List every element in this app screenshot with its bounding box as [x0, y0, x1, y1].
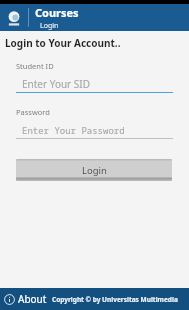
staticText: Password — [16, 107, 50, 117]
staticText: Courses — [35, 5, 79, 20]
button[interactable]: Enter Your Password — [16, 121, 173, 139]
staticText: Enter Your SID — [22, 77, 91, 91]
staticText: Student ID — [16, 61, 54, 71]
staticText: About — [18, 292, 47, 306]
staticText: Enter Your Password — [22, 124, 125, 136]
staticText: Copyright © by Universitas Multimedia Nu… — [52, 295, 189, 304]
staticText: Login — [40, 21, 59, 31]
button[interactable]: Login — [16, 159, 172, 181]
staticText: Login — [82, 164, 107, 177]
button[interactable]: About — [0, 288, 189, 310]
button[interactable]: Enter Your SID — [16, 75, 173, 93]
button[interactable]: App logo — [5, 9, 23, 27]
other: About — [4, 294, 15, 305]
staticText: Login to Your Account.. — [5, 36, 121, 50]
